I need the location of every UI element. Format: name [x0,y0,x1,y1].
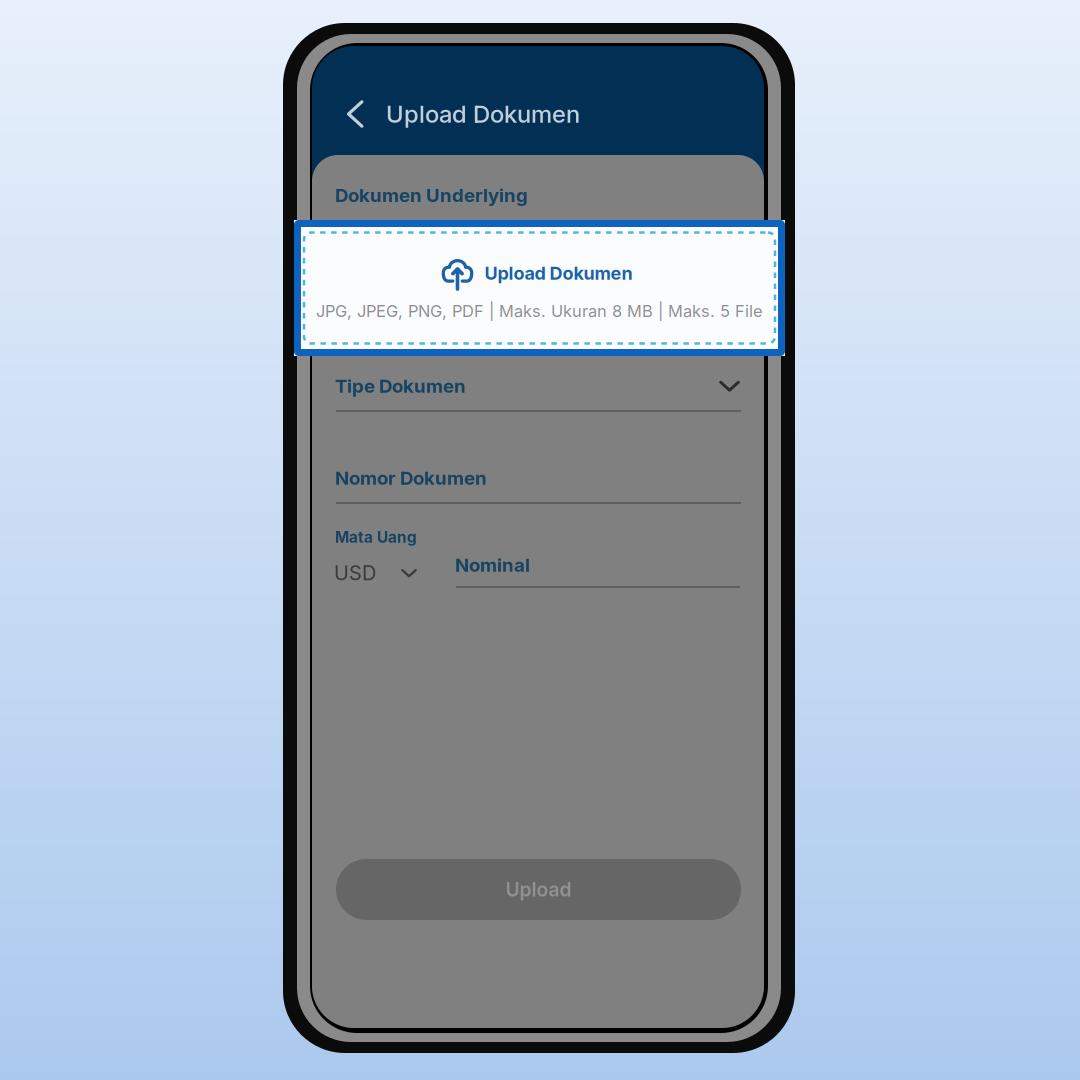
staticText: Nominal [455,554,530,576]
button[interactable]: Nominal [455,551,738,579]
staticText: Tipe Dokumen [335,375,466,397]
staticText: JPG, JPEG, PNG, PDF | Maks. Ukuran 8 MB … [336,303,740,322]
staticText: Upload [505,878,571,901]
button[interactable]: Nomor Dokumen [335,463,740,493]
staticText: Upload Dokumen [484,262,632,284]
staticText: USD [334,561,376,585]
staticText: Dokumen Underlying [335,184,528,207]
button[interactable]: Tipe Dokumen [335,371,740,401]
staticText: Mata Uang [335,528,417,547]
button[interactable]: USD [334,559,437,587]
button[interactable]: Upload [336,859,741,920]
button[interactable]: Upload Dokumen [294,220,785,356]
staticText: Upload Dokumen [386,99,580,128]
button[interactable]: Back [341,91,386,137]
staticText: Nomor Dokumen [335,467,487,489]
staticText: Upload Dokumen [483,264,631,285]
staticText: JPG, JPEG, PNG, PDF | Maks. Ukuran 8 MB … [316,301,763,321]
